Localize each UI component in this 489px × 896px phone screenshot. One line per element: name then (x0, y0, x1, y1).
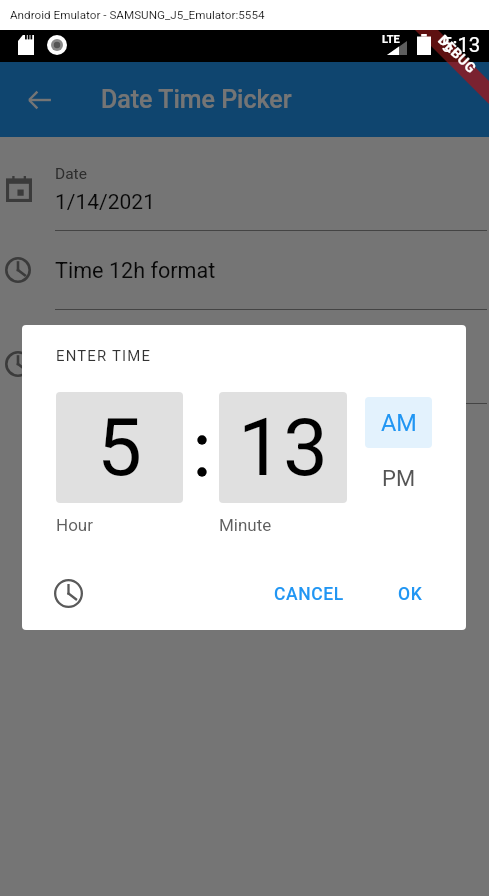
staticText: Date Time Picker (101, 85, 292, 114)
button[interactable]: Switch to clock mode (54, 579, 83, 608)
button[interactable] (0, 231, 489, 310)
button[interactable] (0, 310, 489, 389)
button[interactable]: 5 (56, 392, 183, 503)
button[interactable]: Back (22, 62, 58, 137)
staticText: 1/14/2021 (55, 190, 155, 215)
staticText: LTE (382, 33, 400, 46)
button[interactable]: CANCEL (263, 577, 355, 611)
staticText: DEBUG (435, 32, 480, 76)
staticText: ENTER TIME (56, 347, 152, 364)
button[interactable]: AM (365, 397, 432, 448)
staticText: 13 (238, 401, 328, 495)
staticText: Android Emulator - SAMSUNG_J5_Emulator:5… (10, 8, 265, 22)
staticText: PM (382, 466, 416, 492)
staticText: 5 (97, 401, 142, 495)
staticText: AM (381, 409, 417, 437)
staticText: Hour (56, 515, 93, 535)
staticText: Date (55, 165, 87, 183)
staticText: OK (398, 584, 423, 605)
staticText: Time 12h format (55, 258, 216, 283)
staticText: 5:13 (441, 33, 481, 57)
button[interactable] (0, 137, 489, 230)
staticText: CANCEL (274, 584, 344, 605)
staticText: Minute (219, 515, 272, 535)
button[interactable]: OK (382, 577, 438, 611)
button[interactable]: PM (365, 453, 432, 504)
staticText: Time 24h format (55, 352, 216, 377)
button[interactable]: 13 (219, 392, 347, 503)
